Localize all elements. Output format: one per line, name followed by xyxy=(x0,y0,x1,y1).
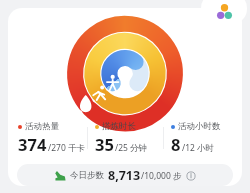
staticText: 活动热量 xyxy=(25,121,59,132)
staticText: /25 分钟 xyxy=(115,142,148,154)
button[interactable]: 活动热量 xyxy=(11,119,87,157)
button[interactable]: 活动小时数 xyxy=(164,119,239,157)
button[interactable]: Info xyxy=(186,171,196,181)
staticText: 搭炼时长 xyxy=(102,121,136,132)
staticText: /10,000 步 xyxy=(141,170,182,182)
button[interactable]: 今日步数 xyxy=(17,164,233,186)
staticText: /12 小时 xyxy=(182,142,215,154)
staticText: 今日步数 xyxy=(70,170,104,181)
button[interactable]: 搭炼时长 xyxy=(88,119,163,157)
staticText: 35 xyxy=(95,133,114,155)
button[interactable]: Health apps xyxy=(201,0,247,24)
staticText: 374 xyxy=(18,133,47,155)
staticText: 8 xyxy=(171,133,181,155)
button[interactable]: Activity rings xyxy=(67,10,183,116)
staticText: 8,713 xyxy=(108,167,141,184)
staticText: /270 千卡 xyxy=(48,142,85,154)
staticText: 活动小时数 xyxy=(178,121,221,132)
